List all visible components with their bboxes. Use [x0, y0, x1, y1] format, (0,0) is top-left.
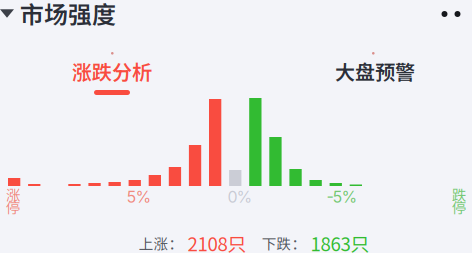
staticText: 涨 — [6, 184, 21, 205]
staticText: 0% — [227, 187, 252, 207]
staticText: 跌 — [452, 184, 467, 205]
staticText: 下跌 — [261, 232, 291, 253]
staticText: ： — [291, 232, 306, 253]
button[interactable]: 市场强度 — [0, 0, 140, 26]
staticText: 上涨 — [138, 232, 168, 253]
staticText: 2108只 — [187, 229, 246, 253]
button[interactable]: 大盘预警 — [320, 61, 430, 101]
staticText: 市场强度 — [20, 0, 116, 30]
staticText: ： — [168, 232, 183, 253]
staticText: 涨跌分析 — [72, 56, 152, 85]
staticText: 停 — [452, 196, 467, 217]
button[interactable]: 更多 — [436, 4, 466, 24]
staticText: 停 — [6, 196, 21, 217]
staticText: 1863只 — [310, 229, 369, 253]
staticText: 5% — [126, 187, 151, 207]
staticText: 大盘预警 — [335, 56, 415, 85]
staticText: -5% — [327, 187, 357, 207]
button[interactable]: 涨跌分析 — [57, 61, 167, 101]
